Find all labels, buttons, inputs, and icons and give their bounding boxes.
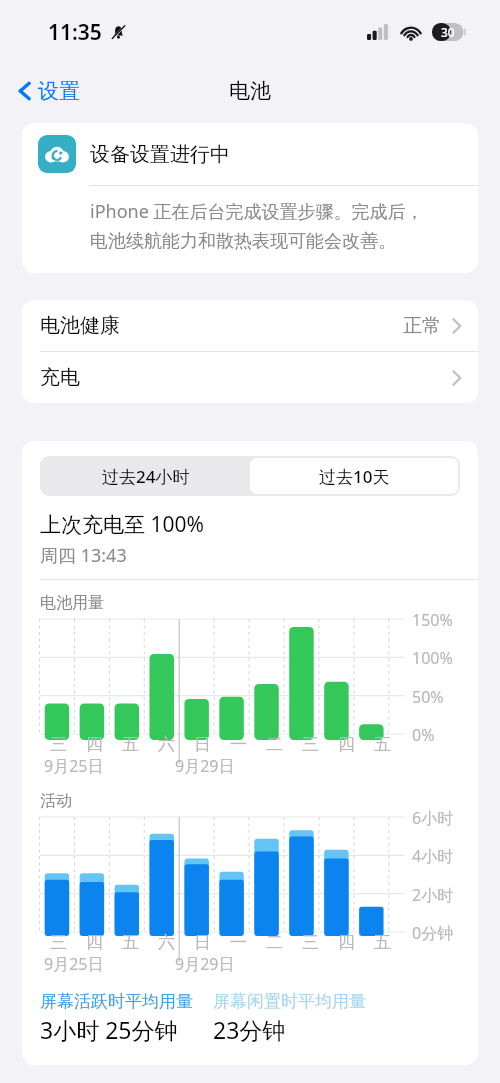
staticText: 2小时	[412, 884, 454, 906]
staticText: 30	[441, 24, 455, 40]
staticText: 六	[158, 734, 175, 755]
staticText: 正常	[403, 314, 441, 338]
staticText: 3小时 25分钟	[40, 1014, 178, 1045]
staticText: 上次充电至 100%	[40, 510, 204, 539]
staticText: 四	[338, 932, 355, 953]
button[interactable]: 设备设置进行中	[22, 123, 478, 185]
staticText: 充电	[40, 365, 80, 390]
staticText: 电池续航能力和散热表现可能会改善。	[90, 230, 396, 253]
staticText: 六	[158, 932, 175, 953]
staticText: 活动	[40, 791, 72, 811]
staticText: 三	[50, 932, 67, 953]
staticText: 0分钟	[412, 922, 454, 944]
staticText: 设备设置进行中	[90, 142, 230, 167]
staticText: 五	[122, 932, 139, 953]
button[interactable]: 充电	[22, 352, 478, 403]
staticText: 23分钟	[213, 1014, 286, 1045]
staticText: 4小时	[412, 845, 454, 867]
staticText: 屏幕闲置时平均用量	[213, 991, 366, 1012]
staticText: 一	[230, 734, 247, 755]
staticText: 9月25日	[44, 755, 104, 777]
staticText: 日	[194, 932, 211, 953]
staticText: 过去24小时	[102, 465, 190, 488]
staticText: 一	[230, 932, 247, 953]
staticText: 三	[302, 932, 319, 953]
staticText: 周四 13:43	[40, 543, 127, 568]
staticText: 150%	[412, 609, 453, 631]
staticText: 四	[338, 734, 355, 755]
staticText: 二	[266, 734, 283, 755]
staticText: 6小时	[412, 807, 454, 829]
staticText: 0%	[412, 724, 435, 746]
button[interactable]: 过去24小时	[42, 458, 250, 494]
staticText: 三	[302, 734, 319, 755]
staticText: 日	[194, 734, 211, 755]
button[interactable]: 过去10天	[250, 458, 458, 494]
staticText: 四	[86, 932, 103, 953]
staticText: 过去10天	[319, 465, 390, 488]
staticText: 屏幕活跃时平均用量	[40, 991, 193, 1012]
staticText: 五	[374, 734, 391, 755]
staticText: 50%	[412, 686, 444, 708]
staticText: 9月29日	[175, 953, 235, 975]
button[interactable]: 设置	[12, 74, 86, 108]
staticText: 五	[122, 734, 139, 755]
staticText: 9月29日	[175, 755, 235, 777]
staticText: 电池	[229, 78, 271, 104]
staticText: 三	[50, 734, 67, 755]
staticText: 五	[374, 932, 391, 953]
staticText: 9月25日	[44, 953, 104, 975]
staticText: 电池用量	[40, 593, 104, 613]
staticText: 设置	[38, 78, 80, 104]
button[interactable]: 电池健康	[22, 300, 478, 351]
staticText: 电池健康	[40, 313, 120, 338]
staticText: 四	[86, 734, 103, 755]
staticText: 100%	[412, 647, 453, 669]
staticText: iPhone 正在后台完成设置步骤。完成后，	[90, 199, 424, 224]
staticText: 二	[266, 932, 283, 953]
staticText: 11:35	[48, 18, 102, 47]
